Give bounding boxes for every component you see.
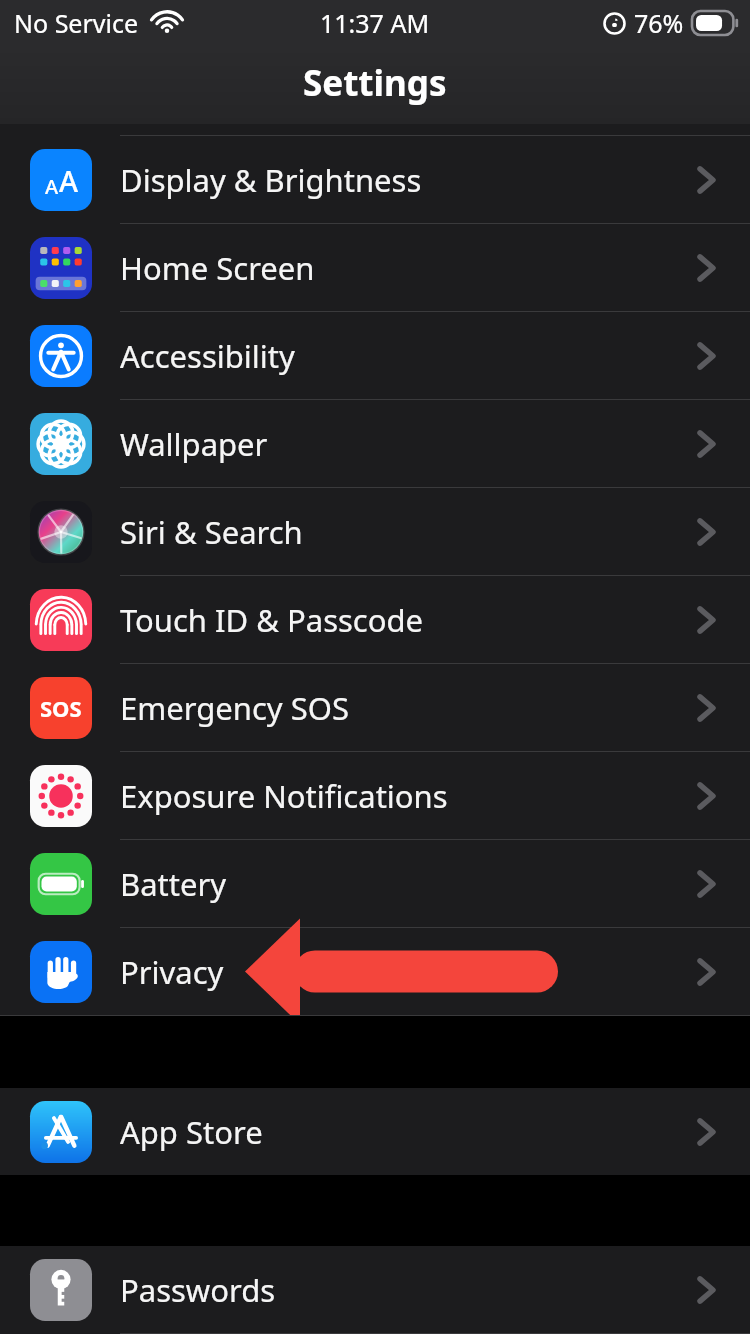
button[interactable]: Passwords — [0, 1246, 750, 1334]
staticText: Wallpaper — [120, 423, 697, 465]
other: Open — [697, 516, 717, 548]
other: Open — [697, 164, 717, 196]
other: Open — [697, 780, 717, 812]
staticText: No Service — [14, 6, 139, 40]
staticText: A — [59, 161, 78, 200]
button[interactable]: Siri & Search — [0, 488, 750, 576]
staticText: Accessibility — [120, 335, 697, 377]
staticText: Exposure Notifications — [120, 775, 697, 817]
button[interactable]: Privacy — [0, 928, 750, 1016]
staticText: Touch ID & Passcode — [120, 599, 697, 641]
other: Open — [697, 1274, 717, 1306]
other: Open — [697, 604, 717, 636]
staticText: A — [45, 173, 59, 200]
other: Open — [697, 428, 717, 460]
other: Open — [697, 868, 717, 900]
staticText: Privacy — [120, 951, 697, 993]
button[interactable]: Home Screen — [0, 224, 750, 312]
button[interactable]: Exposure Notifications — [0, 752, 750, 840]
button[interactable]: App Store — [0, 1088, 750, 1175]
other: Open — [697, 340, 717, 372]
other: Open — [697, 692, 717, 724]
other: Open — [697, 956, 717, 988]
other: Open — [697, 1116, 717, 1148]
staticText: Battery — [120, 863, 697, 905]
button[interactable]: Battery — [0, 840, 750, 928]
button[interactable]: Accessibility — [0, 312, 750, 400]
button[interactable]: A — [0, 136, 750, 224]
staticText: App Store — [120, 1111, 697, 1153]
staticText: Emergency SOS — [120, 687, 697, 729]
staticText: 76% — [634, 6, 684, 40]
staticText: 11:37 AM — [320, 6, 430, 40]
staticText: Home Screen — [120, 247, 697, 289]
staticText: SOS — [40, 693, 82, 723]
other: Open — [697, 252, 717, 284]
staticText: Passwords — [120, 1269, 697, 1311]
button[interactable]: Wallpaper — [0, 400, 750, 488]
staticText: Display & Brightness — [120, 159, 697, 201]
staticText: Siri & Search — [120, 511, 697, 553]
staticText: Settings — [303, 59, 447, 107]
button[interactable]: SOS — [0, 664, 750, 752]
button[interactable]: Touch ID & Passcode — [0, 576, 750, 664]
